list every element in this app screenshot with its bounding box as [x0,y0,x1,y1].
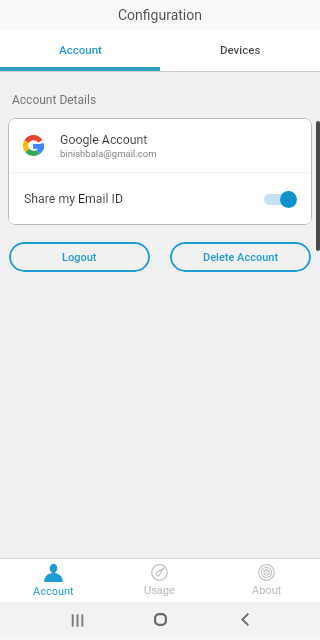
button[interactable]: About [213,559,320,602]
staticText: Google Account [60,133,148,147]
button[interactable]: Share my Email ID [8,173,312,225]
staticText: Account [59,43,102,56]
button[interactable]: Back [232,606,258,632]
button[interactable]: Account [0,30,160,72]
staticText: Account [33,585,74,598]
button[interactable]: Devices [160,30,320,72]
staticText: Account Details [12,93,97,107]
button[interactable]: Usage [106,559,213,602]
button[interactable]: Logout [9,242,150,272]
button[interactable]: Account [0,559,106,602]
button[interactable]: Home [147,606,173,632]
staticText: Devices [220,43,261,56]
staticText: Usage [144,584,175,597]
staticText: Delete Account [203,251,279,264]
button[interactable]: Google Account [8,118,312,172]
staticText: Share my Email ID [24,192,123,206]
staticText: Logout [62,251,97,264]
staticText: About [252,584,282,597]
button[interactable]: Recent apps [64,607,90,633]
staticText: Configuration [118,7,202,23]
staticText: binishbala@gmail.com [60,148,157,159]
button[interactable]: Delete Account [170,242,311,272]
